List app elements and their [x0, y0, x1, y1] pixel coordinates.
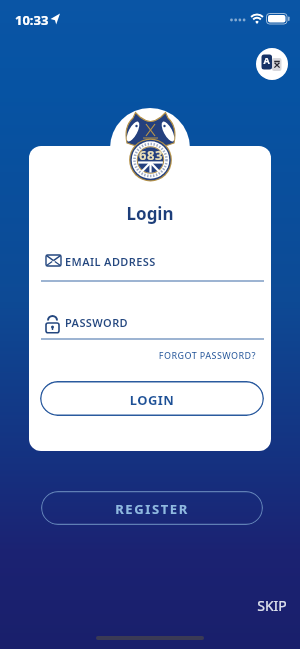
- staticText: SKIP: [250, 596, 294, 616]
- button[interactable]: REGISTER: [41, 491, 263, 525]
- button[interactable]: A: [256, 48, 288, 80]
- staticText: A: [261, 54, 272, 80]
- staticText: EMAIL ADDRESS: [65, 254, 235, 288]
- button[interactable]: LOGIN: [40, 381, 264, 416]
- button[interactable]: EMAIL ADDRESS: [41, 248, 264, 282]
- button[interactable]: PASSWORD: [41, 306, 264, 340]
- staticText: PASSWORD: [65, 315, 235, 349]
- staticText: Login: [75, 202, 225, 649]
- button[interactable]: SKIP: [250, 596, 294, 616]
- staticText: LOGIN: [40, 391, 264, 416]
- staticText: 10:33: [15, 11, 55, 649]
- staticText: 683: [131, 146, 171, 649]
- button[interactable]: FORGOT PASSWORD?: [143, 349, 256, 363]
- staticText: FORGOT PASSWORD?: [143, 349, 256, 363]
- staticText: REGISTER: [41, 500, 263, 525]
